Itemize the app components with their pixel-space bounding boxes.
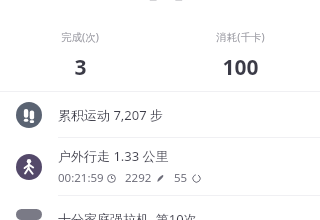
staticText: 消耗(千卡) (216, 30, 265, 44)
staticText: 完成(次) (61, 30, 99, 44)
staticText: 100 (222, 53, 259, 82)
button[interactable]: Outdoor walk (0, 138, 320, 195)
staticText: 户外行走 1.33 公里 (58, 147, 169, 165)
staticText: 3 (74, 53, 87, 82)
staticText: 十分家庭强拉机 第10次 (58, 210, 197, 220)
button[interactable]: Steps (0, 92, 320, 137)
staticText: 00:21:59 (58, 170, 104, 186)
staticText: 55 (174, 170, 188, 186)
button[interactable]: 完成(次) (0, 8, 160, 91)
other: Steps (0, 92, 58, 137)
button[interactable]: 消耗(千卡) (160, 8, 320, 91)
other: Outdoor walk (0, 138, 58, 195)
staticText: 2292 (125, 170, 152, 186)
button[interactable]: Activity (0, 196, 320, 220)
other: Activity (16, 209, 42, 220)
staticText: 累积运动 7,207 步 (58, 106, 163, 124)
